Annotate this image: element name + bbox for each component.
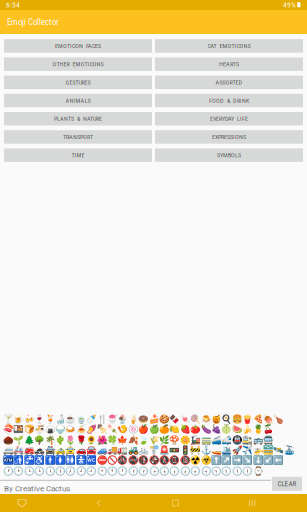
staticText: 49% (283, 1, 296, 9)
staticText: EVERYDAY LIFE (210, 115, 248, 122)
staticText: ASSORTED (215, 79, 242, 86)
staticText: 🍣🍱🍞🍜🍙🍚🍛🍝🍠🍢🍡🍤🍥🍎🍏🍊🍋🍓🍅🍆🍇🍈🍉🍌🍍🍒 (3, 424, 274, 434)
staticText: 🌰🌱🌲🌳🌴🌵🌷🌹🌻🌺🍀🍁🍂🍃🌾🌿🍄🌼🚂🚃🚄🚅🚇🚉🚌🚍 (3, 435, 274, 445)
staticText: FOOD & DRINK (209, 97, 249, 104)
button[interactable]: HEARTS (155, 57, 303, 71)
button[interactable]: GESTURES (4, 76, 152, 89)
button[interactable]: TIME (4, 148, 152, 162)
staticText: ANIMALS (65, 97, 90, 104)
staticText: GESTURES (65, 79, 90, 86)
staticText: 🏧🚮🚰♿🚹🚺🚻🚼🚾⛔🚫🚳🚭🚯🚱🚷📵🔞☢☣⬆↗➡↘⬇↙⬅ (3, 455, 284, 465)
button[interactable]: ANIMALS (4, 94, 152, 107)
button[interactable]: Hide keyboard (0, 494, 44, 512)
staticText: CLEAR (277, 480, 296, 488)
staticText: PLANTS & NATURE (54, 115, 102, 122)
staticText: 🍸🍺🍻🍷🍹🍶☕🍵🍼🍴🍧🍨🍦🍩🍰🍪🍫🍬🍭🍮🍯🍳🍔🍟🍕🍖🍗 (3, 414, 284, 424)
staticText: 6:54 (6, 1, 20, 9)
button[interactable]: CLEAR (272, 477, 302, 491)
button[interactable]: EMOTICON FACES (4, 39, 152, 53)
button[interactable]: OTHER EMOTICONS (4, 57, 152, 71)
button[interactable]: FOOD & DRINK (155, 94, 303, 107)
staticText: Emoji Collector (7, 17, 59, 27)
button[interactable]: Back (77, 494, 121, 512)
button[interactable]: SYMBOLS (155, 148, 303, 162)
staticText: HEARTS (219, 61, 239, 68)
staticText: EXPRESSIONS (212, 133, 246, 141)
staticText: SYMBOLS (217, 152, 241, 159)
button[interactable]: ASSORTED (155, 76, 303, 89)
staticText: EMOTICON FACES (55, 42, 101, 50)
button[interactable]: Home (153, 494, 197, 512)
staticText: 🕐🕑🕒🕓🕔🕕🕖🕗🕘🕙🕚🕛🕜🕝🕞🕟🕠🕡🕢🕣🕤🕥🕦🕧⌚ (3, 466, 264, 476)
staticText: OTHER EMOTICONS (52, 61, 103, 68)
button[interactable]: PLANTS & NATURE (4, 112, 152, 125)
staticText: TRANSPORT (63, 133, 93, 141)
button[interactable]: CAT EMOTICONS (155, 39, 303, 53)
button[interactable]: EXPRESSIONS (155, 130, 303, 144)
staticText: By Creative Cactus (4, 484, 70, 493)
staticText: CAT EMOTICONS (207, 42, 250, 50)
staticText: 🚐🚑🚒🚓🚔🚕🚖🚗🚘🚙🚚🚛🚜🚲🚏🚨🚥🚦🚧⚓🚤🛳🚀✈🚁🚟🛰🚠 (3, 445, 295, 455)
button[interactable]: Recent apps (230, 494, 274, 512)
staticText: TIME (71, 152, 84, 159)
button[interactable]: TRANSPORT (4, 130, 152, 144)
button[interactable]: EVERYDAY LIFE (155, 112, 303, 125)
